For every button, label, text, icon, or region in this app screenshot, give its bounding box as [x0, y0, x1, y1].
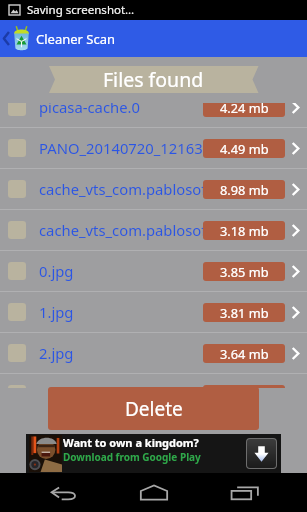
button[interactable]: Want to own a kingdom?	[26, 434, 281, 473]
staticText: Files found	[103, 66, 204, 93]
button[interactable]: 2.jpg	[0, 333, 307, 373]
button[interactable]: Home	[108, 473, 199, 512]
staticText: Download from Google Play	[63, 450, 201, 464]
staticText: 4.24 mb	[220, 103, 269, 116]
button[interactable]: 1.jpg	[0, 292, 307, 332]
button[interactable]: Back	[0, 20, 13, 57]
staticText: 3.18 mb	[220, 222, 269, 239]
button[interactable]: 0.jpg	[0, 251, 307, 291]
staticText: picasa-cache.0	[39, 103, 203, 117]
staticText: 3.64 mb	[220, 345, 269, 362]
button[interactable]: Download	[247, 439, 276, 468]
staticText: 1.jpg	[39, 302, 203, 322]
staticText: 3.jpg	[39, 384, 203, 388]
staticText: 0.jpg	[39, 261, 203, 281]
button[interactable]: Delete	[48, 387, 259, 430]
staticText: Want to own a kingdom?	[63, 435, 199, 450]
staticText: 4.49 mb	[220, 140, 269, 157]
button[interactable]: PANO_20140720_121635.jpg	[0, 128, 307, 168]
button[interactable]: cache_vts_com.pablosoftware	[0, 210, 307, 250]
staticText: Saving screenshot…	[27, 2, 135, 18]
staticText: 2.jpg	[39, 343, 203, 363]
staticText: 8.98 mb	[220, 181, 269, 198]
button[interactable]: Recents	[199, 473, 290, 512]
staticText: cache_vts_com.pablosoftware	[39, 220, 203, 240]
button[interactable]: Back	[17, 473, 108, 512]
button[interactable]: cache_vts_com.pablosoftware	[0, 169, 307, 209]
staticText: 3.81 mb	[220, 304, 269, 321]
staticText: 3.85 mb	[220, 263, 269, 280]
staticText: Cleaner Scan	[36, 30, 116, 48]
staticText: Delete	[125, 396, 183, 422]
button[interactable]: picasa-cache.0	[0, 103, 307, 127]
staticText: cache_vts_com.pablosoftware	[39, 179, 203, 199]
button[interactable]: 3.jpg	[0, 374, 307, 388]
staticText: PANO_20140720_121635.jpg	[39, 138, 203, 158]
